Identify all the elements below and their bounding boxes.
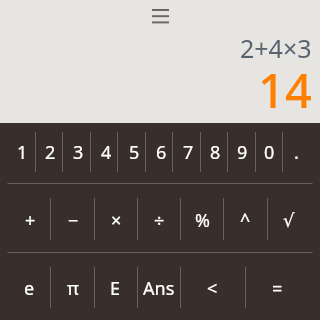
button[interactable]: 8 (202, 123, 229, 183)
staticText: × (111, 208, 122, 233)
staticText: 6 (156, 140, 167, 165)
staticText: ^ (240, 208, 251, 233)
button[interactable]: % (181, 184, 224, 252)
staticText: e (24, 276, 35, 301)
button[interactable]: 5 (120, 123, 148, 183)
button[interactable]: 7 (175, 123, 202, 183)
staticText: 9 (237, 140, 248, 165)
button[interactable]: 2 (36, 123, 64, 183)
staticText: % (195, 208, 210, 233)
button[interactable]: 4 (92, 123, 120, 183)
staticText: 2+4×3 (240, 31, 312, 65)
button[interactable]: . (283, 123, 310, 183)
staticText: = (272, 276, 283, 301)
button[interactable]: ^ (224, 184, 267, 252)
button[interactable]: 0 (256, 123, 283, 183)
staticText: π (67, 276, 79, 301)
button[interactable]: e (8, 253, 51, 320)
button[interactable]: Menu (142, 2, 178, 30)
staticText: 8 (210, 140, 221, 165)
button[interactable]: E (94, 253, 137, 320)
button[interactable]: ÷ (138, 184, 181, 252)
button[interactable]: = (245, 253, 310, 320)
staticText: 14 (258, 58, 312, 122)
staticText: √ (283, 210, 295, 231)
button[interactable]: 6 (148, 123, 175, 183)
button[interactable]: π (51, 253, 94, 320)
staticText: < (207, 276, 218, 301)
staticText: 5 (129, 140, 140, 165)
staticText: 2 (45, 140, 56, 165)
button[interactable]: + (8, 184, 52, 252)
staticText: 4 (101, 140, 112, 165)
button[interactable]: 9 (229, 123, 256, 183)
staticText: 1 (17, 140, 28, 165)
staticText: 7 (183, 140, 194, 165)
button[interactable]: √ (267, 184, 310, 252)
staticText: . (294, 140, 299, 165)
staticText: + (25, 208, 36, 233)
button[interactable]: − (52, 184, 95, 252)
button[interactable]: × (95, 184, 138, 252)
button[interactable]: 3 (64, 123, 92, 183)
staticText: E (110, 276, 121, 301)
staticText: 3 (73, 140, 84, 165)
staticText: ÷ (154, 208, 165, 233)
staticText: − (68, 208, 79, 233)
staticText: Ans (143, 276, 175, 301)
staticText: 0 (264, 140, 275, 165)
button[interactable]: 1 (8, 123, 36, 183)
button[interactable]: < (180, 253, 245, 320)
button[interactable]: Ans (137, 253, 180, 320)
